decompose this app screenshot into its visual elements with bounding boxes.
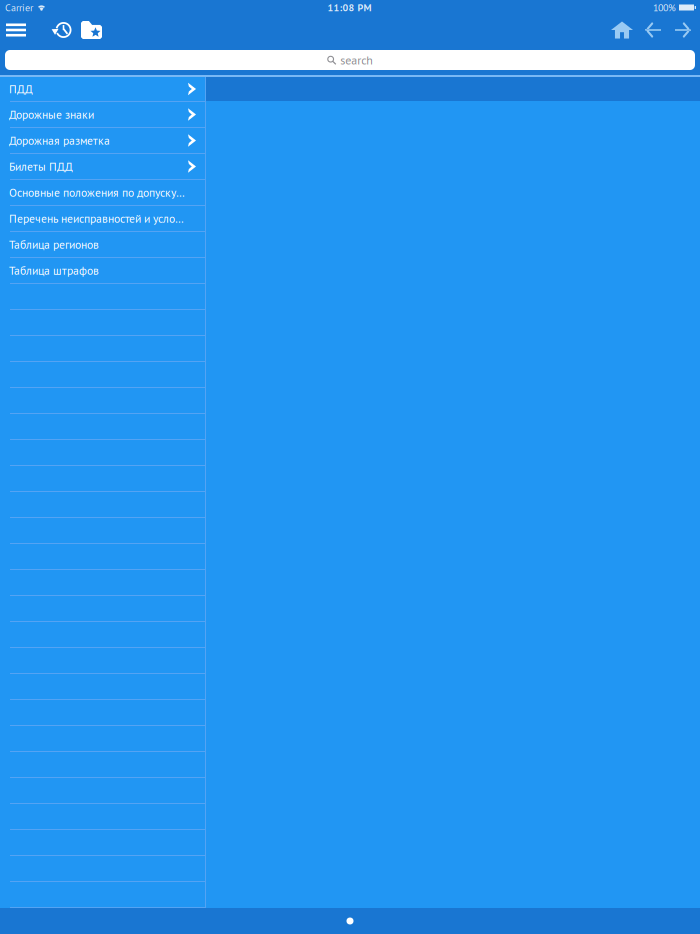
staticText: 100% <box>653 1 676 14</box>
button[interactable]: Таблица штрафов <box>0 258 205 284</box>
staticText: 11:08 PM <box>327 1 371 14</box>
button[interactable]: Menu <box>0 15 38 45</box>
staticText: Таблица регионов <box>9 237 99 252</box>
button[interactable]: History <box>38 15 76 45</box>
button[interactable]: Перечень неисправностей и усло… <box>0 206 205 232</box>
staticText: Таблица штрафов <box>9 263 99 278</box>
staticText: Перечень неисправностей и усло… <box>9 211 184 226</box>
button[interactable]: Дорожные знаки <box>0 102 205 128</box>
button[interactable]: search <box>0 50 700 70</box>
staticText: Дорожные знаки <box>9 107 94 122</box>
button[interactable]: Дорожная разметка <box>0 128 205 154</box>
staticText: Билеты ПДД <box>9 159 73 174</box>
staticText: Основные положения по допуску… <box>9 185 185 200</box>
button[interactable]: Основные положения по допуску… <box>0 180 205 206</box>
button[interactable]: Таблица регионов <box>0 232 205 258</box>
staticText: Дорожная разметка <box>9 133 110 148</box>
button[interactable]: Back <box>634 15 669 45</box>
button[interactable]: Билеты ПДД <box>0 154 205 180</box>
staticText: search <box>340 52 373 68</box>
button[interactable]: ПДД <box>0 77 205 102</box>
button[interactable]: Forward <box>669 15 700 45</box>
button[interactable]: Home <box>602 15 634 45</box>
staticText: ПДД <box>9 81 33 96</box>
button[interactable]: Bookmarks <box>76 15 108 45</box>
staticText: Carrier <box>5 1 33 14</box>
